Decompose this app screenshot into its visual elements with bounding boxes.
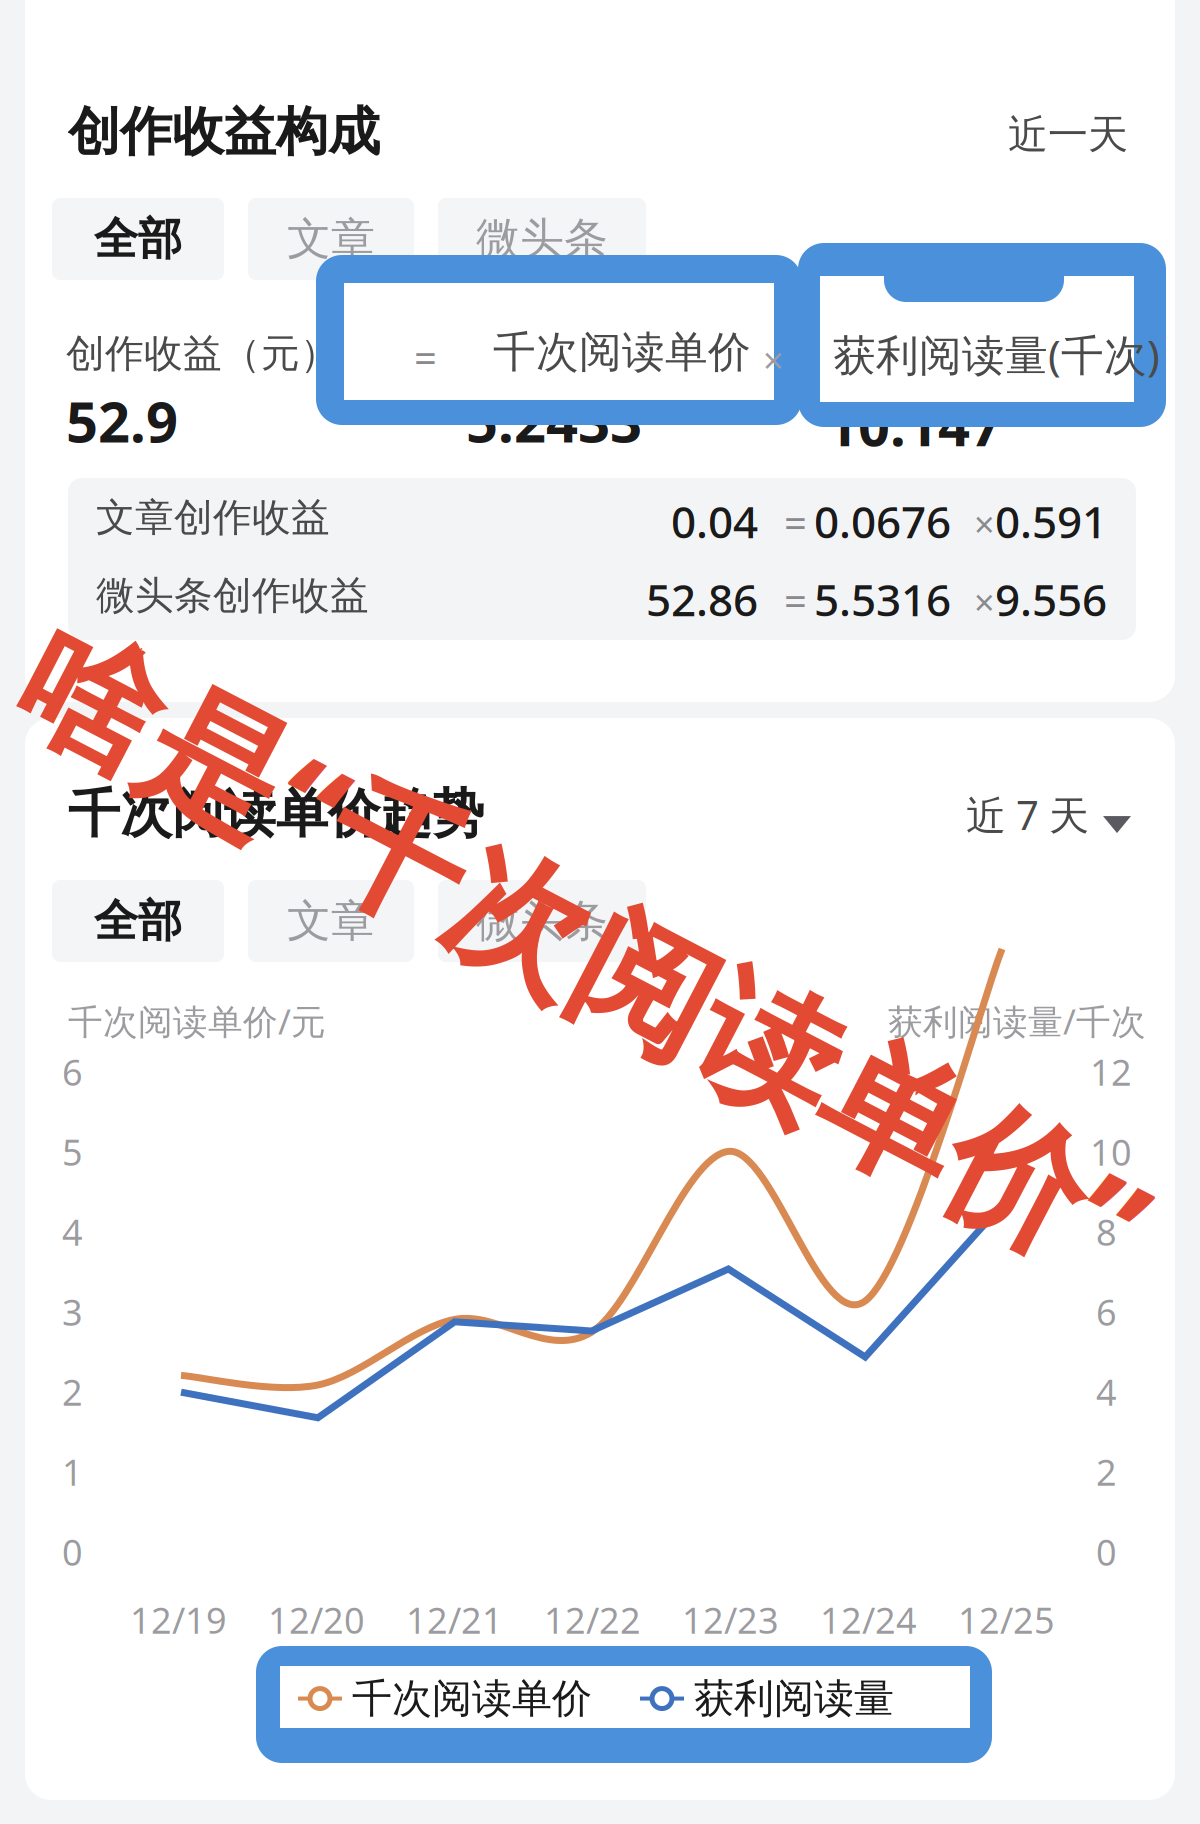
staticText: 千次阅读单价	[466, 330, 700, 377]
staticText: 12/20	[268, 1596, 365, 1644]
staticText: 0.0676	[814, 492, 951, 550]
staticText: 5.2433	[466, 383, 642, 458]
staticText: 近 7 天	[966, 788, 1089, 841]
button[interactable]: 微头条	[438, 880, 646, 962]
button[interactable]: 文章	[248, 880, 414, 962]
staticText: 文章	[287, 894, 375, 948]
staticText: 12/25	[958, 1596, 1055, 1644]
staticText: 全部	[94, 894, 182, 948]
staticText: 52.9	[66, 383, 178, 458]
staticText: 6	[1096, 1288, 1117, 1336]
staticText: 12/22	[544, 1596, 641, 1644]
staticText: 6	[62, 1048, 83, 1096]
staticText: 4	[62, 1208, 83, 1256]
staticText: 2	[62, 1368, 83, 1416]
staticText: 4	[1096, 1368, 1117, 1416]
staticText: =	[784, 574, 807, 627]
staticText: 创作收益（元）	[66, 330, 339, 377]
staticText: 创作收益构成	[68, 100, 380, 164]
staticText: 12/23	[682, 1596, 779, 1644]
button[interactable]: 近 7 天	[966, 788, 1131, 841]
staticText: =	[784, 496, 807, 549]
staticText: 12/21	[406, 1596, 503, 1644]
staticText: 0	[62, 1528, 83, 1576]
staticText: 3	[62, 1288, 83, 1336]
staticText: 12	[1090, 1048, 1132, 1096]
staticText: ×	[974, 578, 995, 626]
staticText: 获利阅读量(千次)	[826, 330, 1123, 381]
staticText: ×	[763, 336, 784, 384]
staticText: 0	[1096, 1528, 1117, 1576]
staticText: 文章创作收益	[96, 494, 330, 541]
staticText: 0.04	[671, 492, 758, 550]
staticText: 5	[62, 1128, 83, 1176]
staticText: 千次阅读单价	[493, 326, 751, 378]
staticText: 52.86	[646, 570, 758, 628]
staticText: 1	[62, 1448, 83, 1496]
staticText: 微头条	[476, 894, 608, 948]
staticText: 10	[1090, 1128, 1132, 1176]
button[interactable]: 全部	[52, 198, 224, 280]
staticText: 微头条创作收益	[96, 572, 369, 619]
staticText: 8	[1096, 1208, 1117, 1256]
staticText: 千次阅读单价/元	[68, 998, 326, 1044]
staticText: 获利阅读量(千次)	[833, 326, 1160, 383]
staticText: 10.147	[826, 387, 1002, 462]
staticText: 获利阅读量/千次	[888, 998, 1146, 1044]
button[interactable]: 近一天	[1008, 110, 1128, 159]
staticText: 文章	[287, 212, 375, 266]
button[interactable]: 全部	[52, 880, 224, 962]
staticText: 微头条	[476, 212, 608, 266]
button[interactable]: 文章	[248, 198, 414, 280]
staticText: 啥是“千次阅读单价”	[0, 858, 1200, 1044]
staticText: 2	[1096, 1448, 1117, 1496]
staticText: 12/24	[820, 1596, 917, 1644]
button[interactable]: 微头条	[438, 198, 646, 280]
staticText: =	[414, 331, 437, 384]
staticText: 12/19	[130, 1596, 227, 1644]
staticText: 0.591	[995, 492, 1107, 550]
staticText: 5.5316	[814, 570, 951, 628]
staticText: 9.556	[995, 570, 1107, 628]
staticText: 获利阅读量	[694, 1674, 894, 1723]
staticText: 近一天	[1008, 110, 1128, 159]
staticText: 千次阅读单价趋势	[68, 782, 484, 846]
staticText: ×	[974, 500, 995, 548]
staticText: 千次阅读单价	[352, 1674, 592, 1723]
staticText: 全部	[94, 212, 182, 266]
